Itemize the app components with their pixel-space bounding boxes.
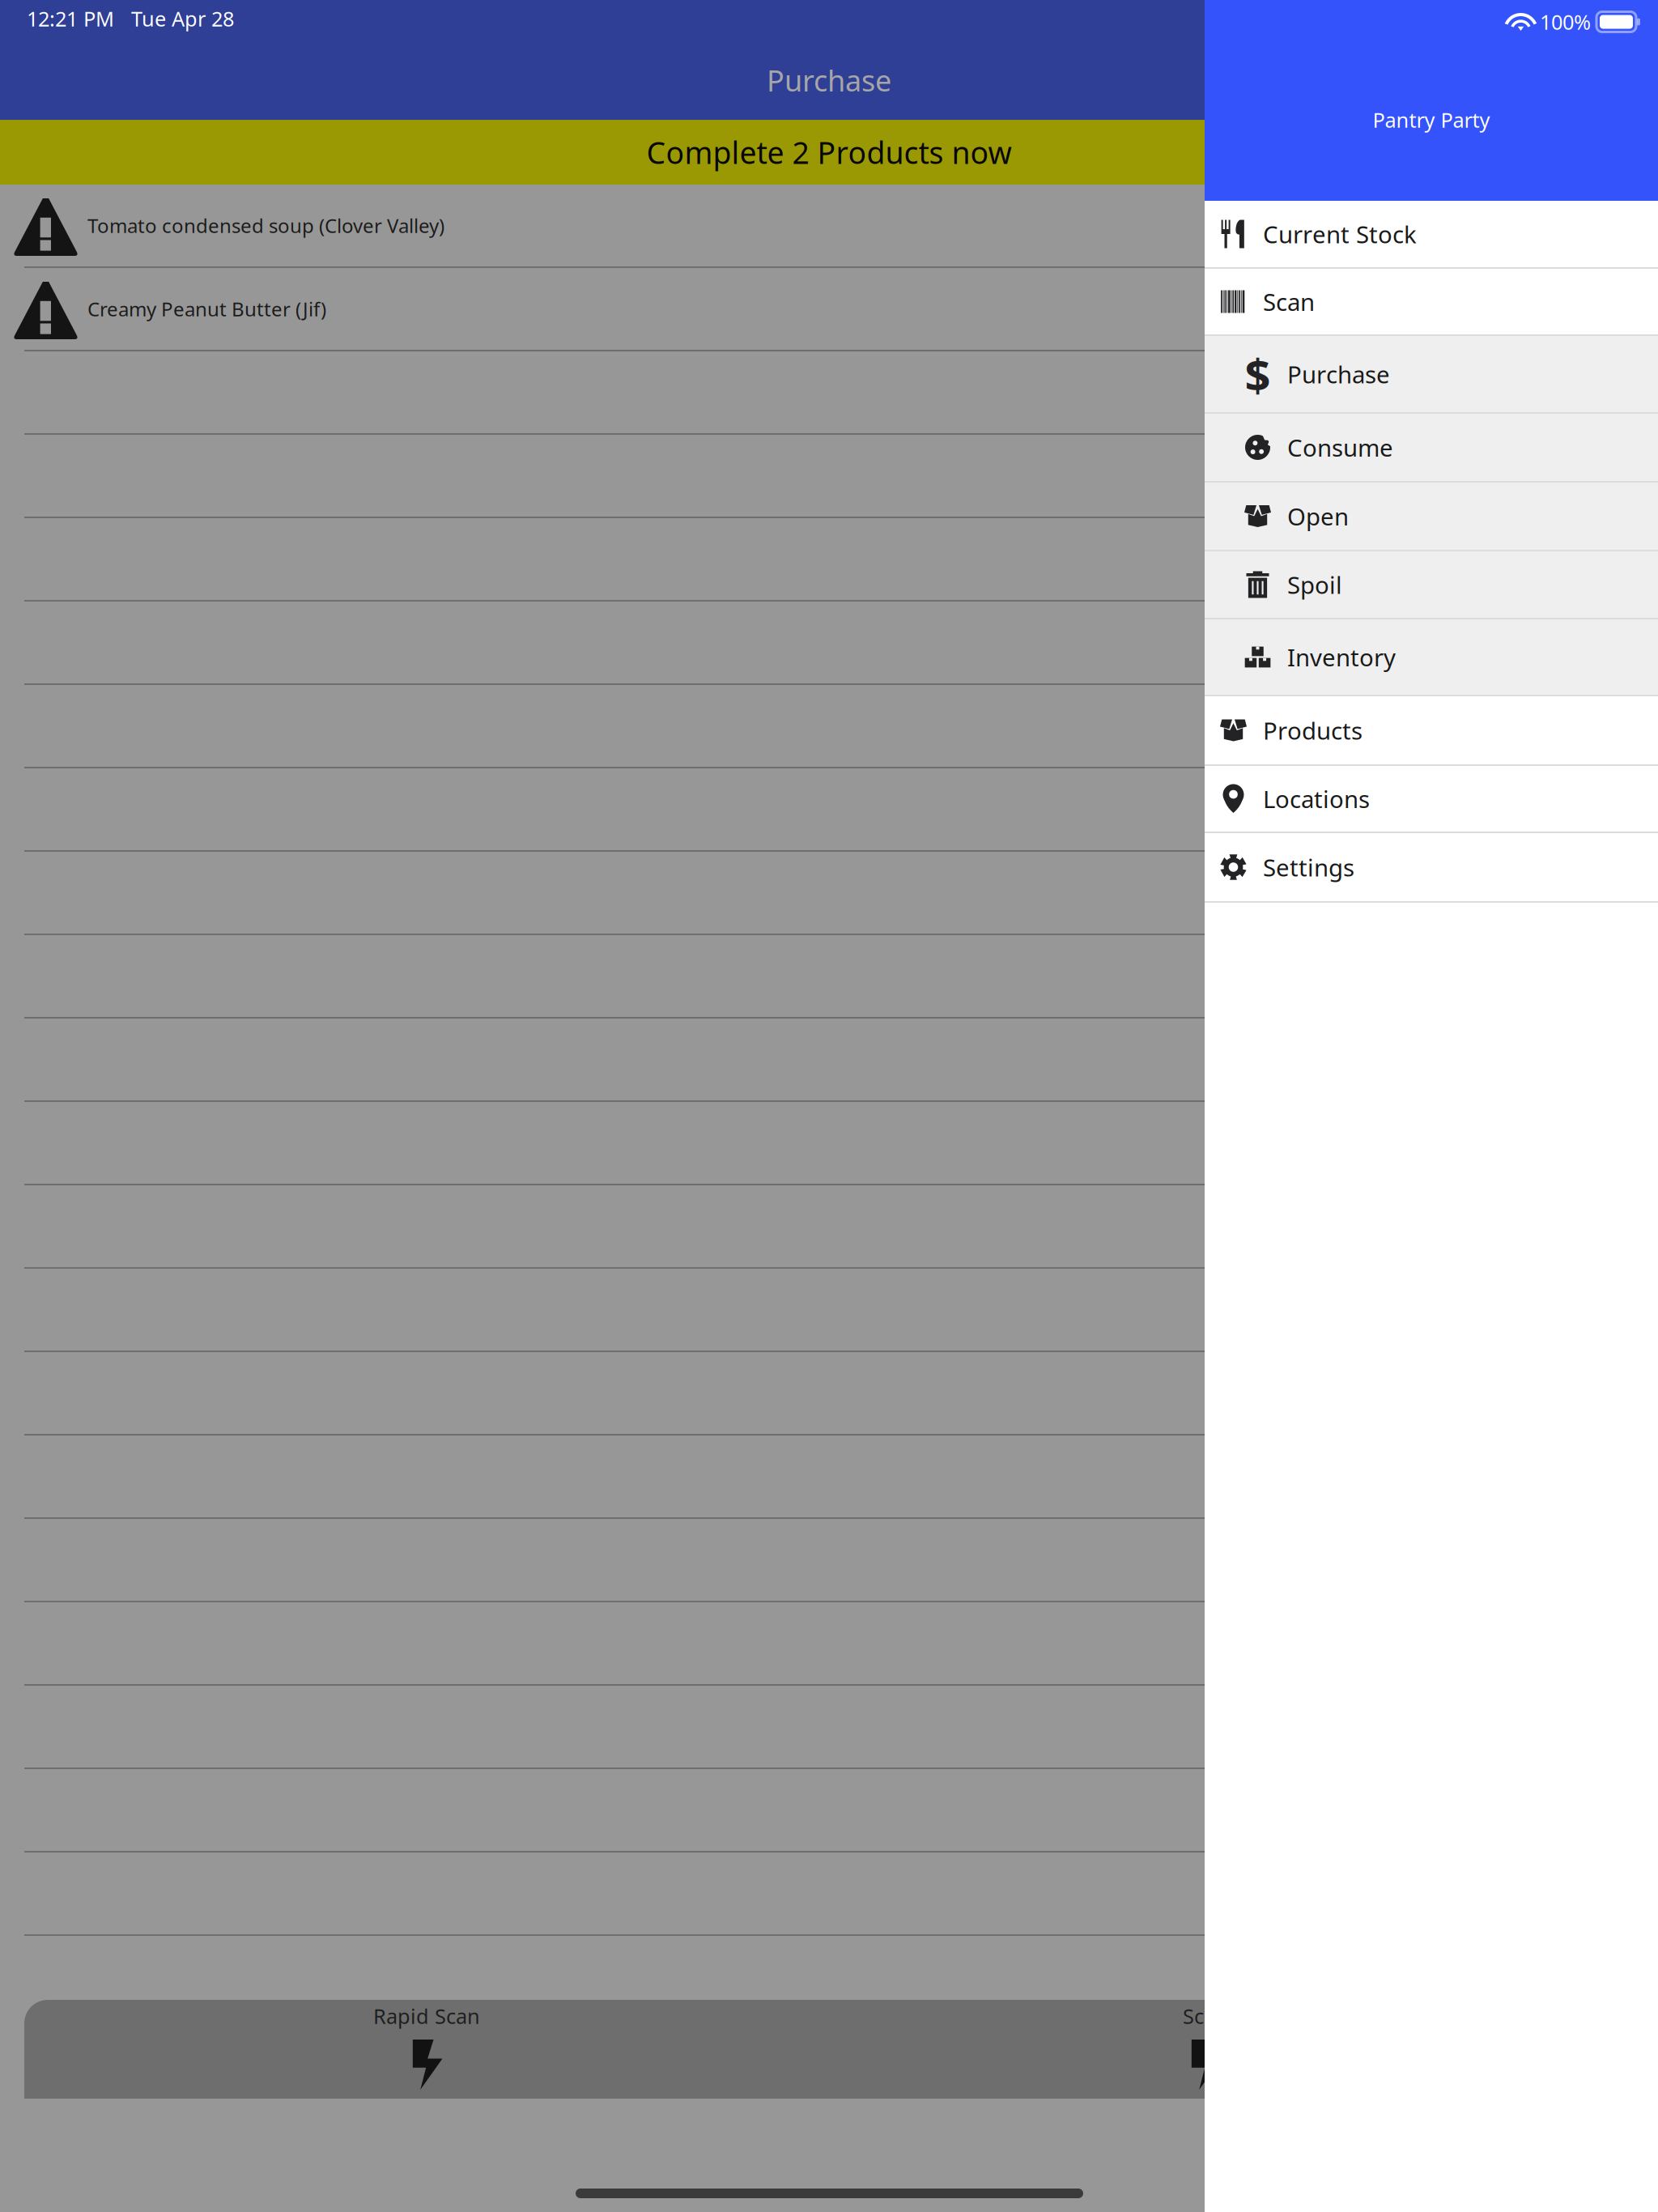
button[interactable]: Rapid Scan: [297, 2000, 556, 2099]
staticText: Rapid Scan: [373, 2002, 480, 2030]
button[interactable]: Scan: [1076, 2000, 1335, 2099]
staticText: Consume: [1287, 432, 1393, 463]
button[interactable]: Scan: [1205, 269, 1658, 336]
button[interactable]: Inventory: [1205, 619, 1658, 696]
button[interactable]: Locations: [1205, 766, 1658, 833]
staticText: Pantry Party: [1373, 106, 1490, 133]
button[interactable]: Products: [1205, 696, 1658, 766]
staticText: Current Stock: [1263, 218, 1417, 250]
button[interactable]: Open: [1205, 483, 1658, 551]
staticText: Purchase: [767, 61, 891, 100]
button[interactable]: Settings: [1205, 833, 1658, 903]
staticText: Complete 2 Products now: [646, 132, 1012, 172]
staticText: Settings: [1263, 851, 1354, 883]
staticText: Scan: [1263, 286, 1315, 317]
staticText: Products: [1263, 715, 1363, 746]
staticText: $: [1245, 344, 1271, 404]
staticText: 100%: [1540, 8, 1591, 35]
button[interactable]: Spoil: [1205, 551, 1658, 619]
button[interactable]: Complete 2 Products now: [0, 120, 1658, 185]
staticText: Creamy Peanut Butter (Jif): [87, 296, 326, 322]
button[interactable]: $: [1205, 336, 1658, 414]
staticText: Tomato condensed soup (Clover Valley): [87, 213, 444, 238]
button[interactable]: Current Stock: [1205, 201, 1658, 269]
staticText: Spoil: [1287, 569, 1342, 600]
staticText: Scan: [1183, 2002, 1228, 2030]
button[interactable]: Tomato condensed soup (Clover Valley): [0, 185, 1658, 268]
staticText: Purchase: [1287, 358, 1390, 390]
button[interactable]: Consume: [1205, 414, 1658, 483]
staticText: Inventory: [1287, 641, 1396, 673]
staticText: Locations: [1263, 783, 1370, 815]
button[interactable]: Creamy Peanut Butter (Jif): [0, 268, 1658, 351]
staticText: Open: [1287, 500, 1349, 532]
staticText: 12:21 PM Tue Apr 28: [27, 5, 234, 32]
